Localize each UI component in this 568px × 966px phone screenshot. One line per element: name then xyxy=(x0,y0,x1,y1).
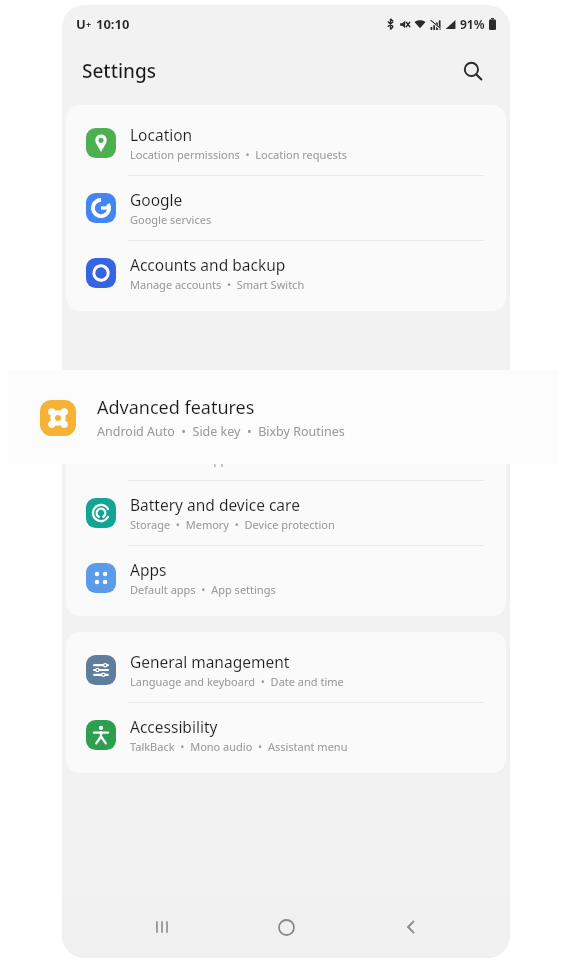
staticText: General management xyxy=(130,651,290,672)
button[interactable]: Digital Wellbeing and parental controls xyxy=(66,417,506,480)
button[interactable]: Apps xyxy=(66,546,506,610)
staticText: U xyxy=(76,15,86,33)
staticText: 10:10 xyxy=(96,15,130,33)
button[interactable]: Location xyxy=(66,111,506,175)
button[interactable]: Battery and device care xyxy=(66,481,506,545)
button[interactable]: Back xyxy=(386,902,436,952)
staticText: Manage accounts • Smart Switch xyxy=(130,277,305,292)
staticText: Language and keyboard • Date and time xyxy=(130,674,344,689)
staticText: Apps xyxy=(130,559,167,580)
staticText: TalkBack • Mono audio • Assistant menu xyxy=(130,739,348,754)
button[interactable]: Accessibility xyxy=(66,703,506,767)
staticText: Settings xyxy=(82,58,156,84)
button[interactable]: Recents xyxy=(137,902,187,952)
staticText: Default apps • App settings xyxy=(130,582,276,597)
staticText: Android Auto • Side key • Bixby Routines xyxy=(97,423,345,440)
button[interactable]: Accounts and backup xyxy=(66,241,506,305)
staticText: 91% xyxy=(460,16,485,32)
staticText: Screen time • App timers • Bedtime mode xyxy=(130,452,355,467)
staticText: Location permissions • Location requests xyxy=(130,147,348,162)
staticText: Storage • Memory • Device protection xyxy=(130,517,335,532)
button[interactable]: Google xyxy=(66,176,506,240)
button[interactable]: Home xyxy=(261,902,311,952)
staticText: Google xyxy=(130,189,183,210)
staticText: + xyxy=(86,18,92,30)
staticText: Digital Wellbeing and parental controls xyxy=(130,430,395,450)
button[interactable]: Advanced features xyxy=(8,370,558,464)
staticText: Accessibility xyxy=(130,716,218,737)
button[interactable]: General management xyxy=(66,638,506,702)
staticText: Location xyxy=(130,124,193,145)
staticText: Google services xyxy=(130,212,212,227)
staticText: Accounts and backup xyxy=(130,254,286,275)
staticText: Advanced features xyxy=(97,395,255,420)
staticText: Battery and device care xyxy=(130,494,300,515)
button[interactable]: Search xyxy=(456,54,490,88)
